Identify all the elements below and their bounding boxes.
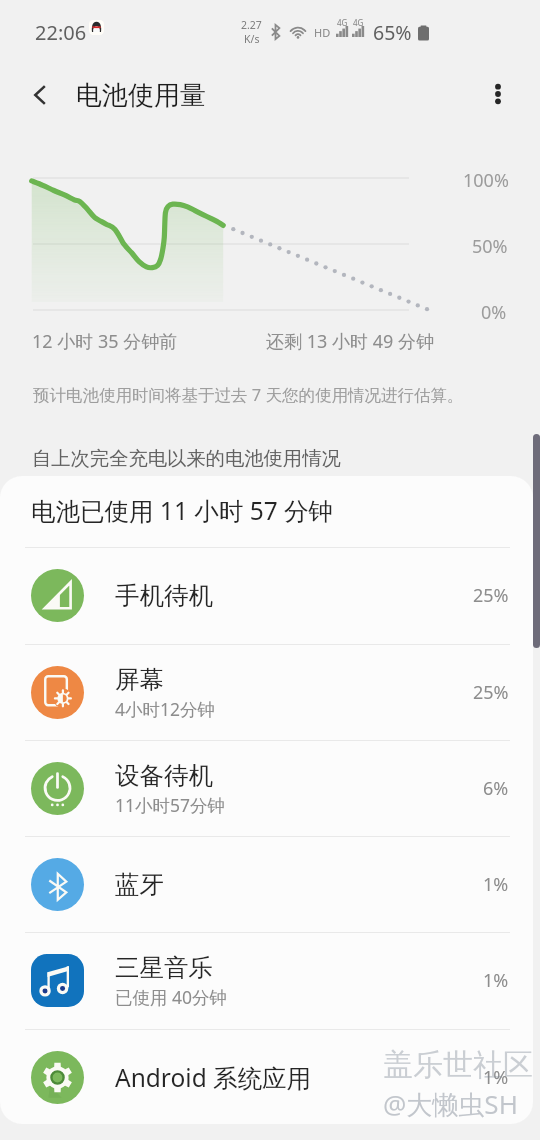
staticText: 65%: [373, 19, 412, 46]
staticText: 电池使用量: [76, 79, 206, 112]
staticText: 12 小时 35 分钟前: [32, 329, 178, 354]
staticText: 2.27: [241, 18, 262, 32]
staticText: 4G: [337, 17, 348, 28]
button[interactable]: Back: [18, 72, 64, 118]
staticText: 50%: [472, 234, 508, 259]
staticText: 0%: [481, 300, 507, 325]
button[interactable]: More options: [474, 70, 522, 118]
staticText: 还剩 13 小时 49 分钟: [266, 329, 434, 354]
staticText: 25%: [473, 680, 509, 705]
staticText: 6%: [483, 776, 509, 801]
staticText: 25%: [473, 583, 509, 608]
staticText: 4小时12分钟: [115, 697, 216, 721]
staticText: 1%: [483, 872, 509, 897]
staticText: K/s: [244, 32, 260, 46]
staticText: 11小时57分钟: [115, 793, 226, 817]
staticText: @大懒虫SH: [383, 1086, 518, 1122]
button[interactable]: 设备待机: [0, 741, 533, 836]
staticText: 1%: [483, 1065, 509, 1090]
button[interactable]: 手机待机: [0, 548, 533, 643]
button[interactable]: 屏幕: [0, 645, 533, 740]
button[interactable]: Android 系统应用: [0, 1030, 533, 1124]
staticText: 三星音乐: [115, 952, 213, 983]
staticText: 手机待机: [115, 580, 213, 611]
button[interactable]: 三星音乐: [0, 933, 533, 1028]
staticText: 盖乐世社区: [383, 1046, 533, 1084]
staticText: 4G: [353, 17, 364, 28]
staticText: 蓝牙: [115, 869, 164, 900]
staticText: 100%: [463, 168, 509, 193]
staticText: 22:06: [35, 19, 87, 46]
button[interactable]: 蓝牙: [0, 837, 533, 932]
staticText: 电池已使用 11 小时 57 分钟: [31, 494, 334, 527]
staticText: 已使用 40分钟: [115, 985, 228, 1009]
staticText: 设备待机: [115, 760, 213, 791]
staticText: 1%: [483, 968, 509, 993]
staticText: Android 系统应用: [115, 1061, 312, 1094]
staticText: HD: [314, 25, 331, 40]
staticText: 预计电池使用时间将基于过去 7 天您的使用情况进行估算。: [33, 383, 464, 406]
staticText: 自上次完全充电以来的电池使用情况: [32, 446, 341, 470]
staticText: 屏幕: [115, 664, 164, 695]
